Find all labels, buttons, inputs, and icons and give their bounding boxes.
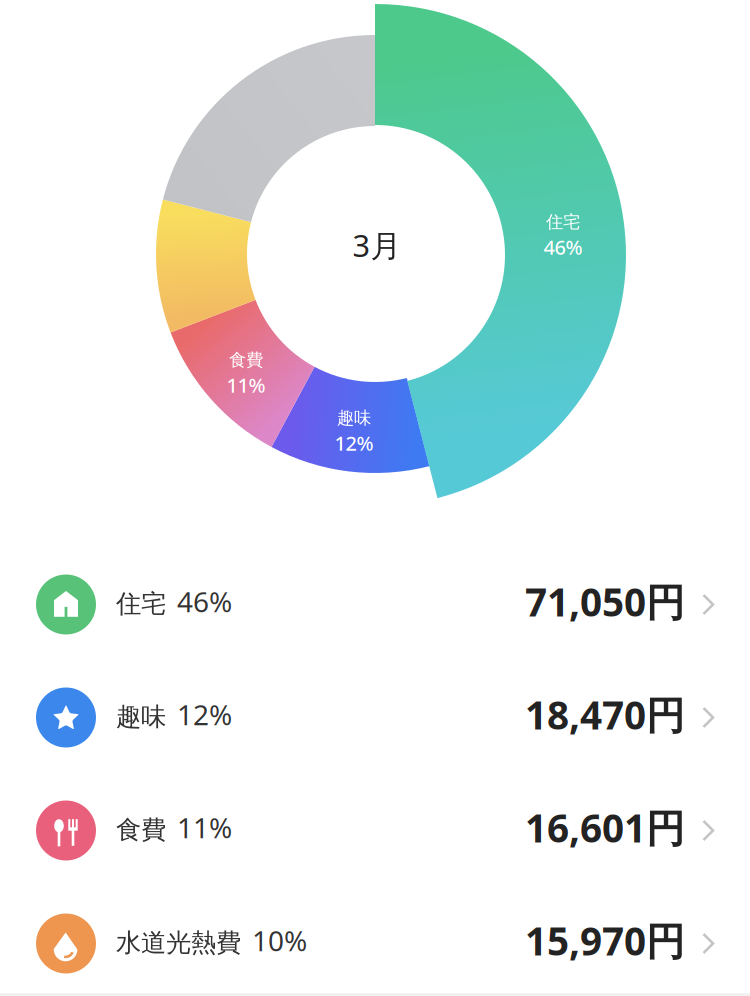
staticText: 16,601円 bbox=[525, 802, 685, 853]
staticText: 11% bbox=[177, 809, 232, 846]
staticText: 3月 bbox=[352, 225, 401, 265]
staticText: 15,970円 bbox=[525, 915, 685, 966]
staticText: 46% bbox=[177, 583, 232, 620]
staticText: 住宅 bbox=[546, 211, 580, 233]
button[interactable]: 水道光熱費 bbox=[0, 887, 750, 996]
staticText: 趣味 bbox=[337, 407, 371, 429]
staticText: 12% bbox=[177, 696, 232, 733]
staticText: 12% bbox=[334, 430, 373, 456]
staticText: 水道光熱費 bbox=[116, 927, 241, 958]
button[interactable]: 趣味 bbox=[0, 661, 750, 773]
staticText: 趣味 bbox=[116, 701, 166, 732]
staticText: 食費 bbox=[229, 349, 263, 371]
staticText: 食費 bbox=[116, 814, 166, 845]
staticText: 10% bbox=[252, 922, 307, 959]
staticText: 46% bbox=[543, 234, 582, 260]
staticText: 11% bbox=[226, 372, 265, 398]
button[interactable]: 食費 bbox=[0, 774, 750, 886]
staticText: 住宅 bbox=[116, 588, 166, 619]
button[interactable]: 住宅 bbox=[0, 548, 750, 660]
staticText: 71,050円 bbox=[525, 576, 685, 627]
staticText: 18,470円 bbox=[525, 689, 685, 740]
